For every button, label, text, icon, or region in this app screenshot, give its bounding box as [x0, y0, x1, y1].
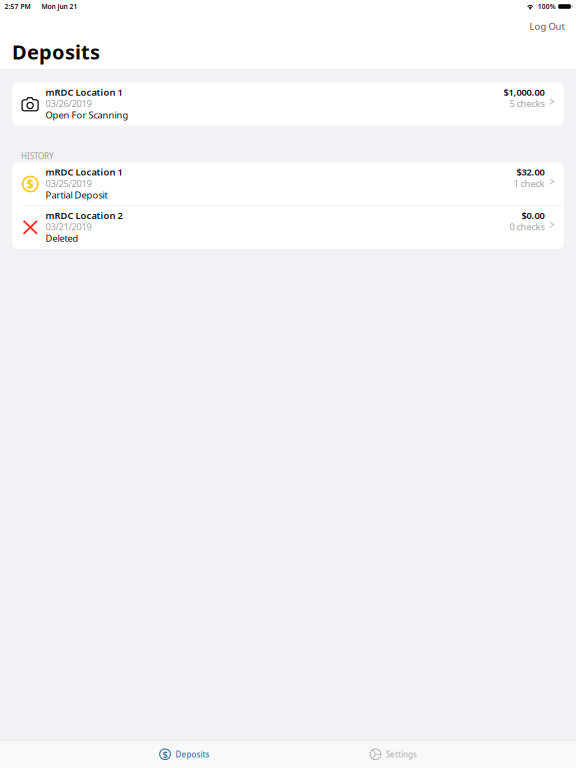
staticText: mRDC Location 2 [46, 209, 123, 221]
staticText: Log Out [529, 20, 564, 32]
button[interactable]: Log Out [522, 13, 571, 34]
staticText: Open For Scanning [46, 109, 129, 121]
staticText: Settings [386, 749, 417, 760]
staticText: 0 checks [509, 220, 544, 233]
staticText: $1,000.00 [503, 86, 544, 98]
staticText: $ [27, 176, 34, 192]
staticText: 03/26/2019 [46, 97, 92, 110]
staticText: 5 checks [509, 97, 544, 110]
staticText: mRDC Location 1 [46, 86, 123, 98]
staticText: 03/25/2019 [46, 177, 92, 190]
staticText: 100% [538, 2, 556, 11]
button[interactable]: mRDC Location 2 [12, 206, 564, 249]
button[interactable]: $ [153, 741, 215, 768]
staticText: $32.00 [516, 166, 544, 178]
staticText: Deposits [12, 38, 100, 65]
staticText: Mon Jun 21 [41, 2, 77, 11]
staticText: mRDC Location 1 [46, 166, 123, 178]
staticText: Deposits [175, 749, 209, 760]
staticText: HISTORY [21, 151, 54, 161]
staticText: 1 check [513, 177, 544, 190]
button[interactable]: $ [12, 162, 564, 206]
button[interactable]: mRDC Location 1 [12, 82, 564, 126]
staticText: $0.00 [521, 209, 544, 221]
staticText: 2:57 PM [4, 2, 30, 11]
staticText: Partial Deposit [46, 189, 108, 201]
staticText: $ [162, 748, 167, 760]
button[interactable]: Settings [363, 741, 423, 768]
staticText: Deleted [46, 232, 79, 244]
staticText: 03/21/2019 [46, 220, 92, 233]
